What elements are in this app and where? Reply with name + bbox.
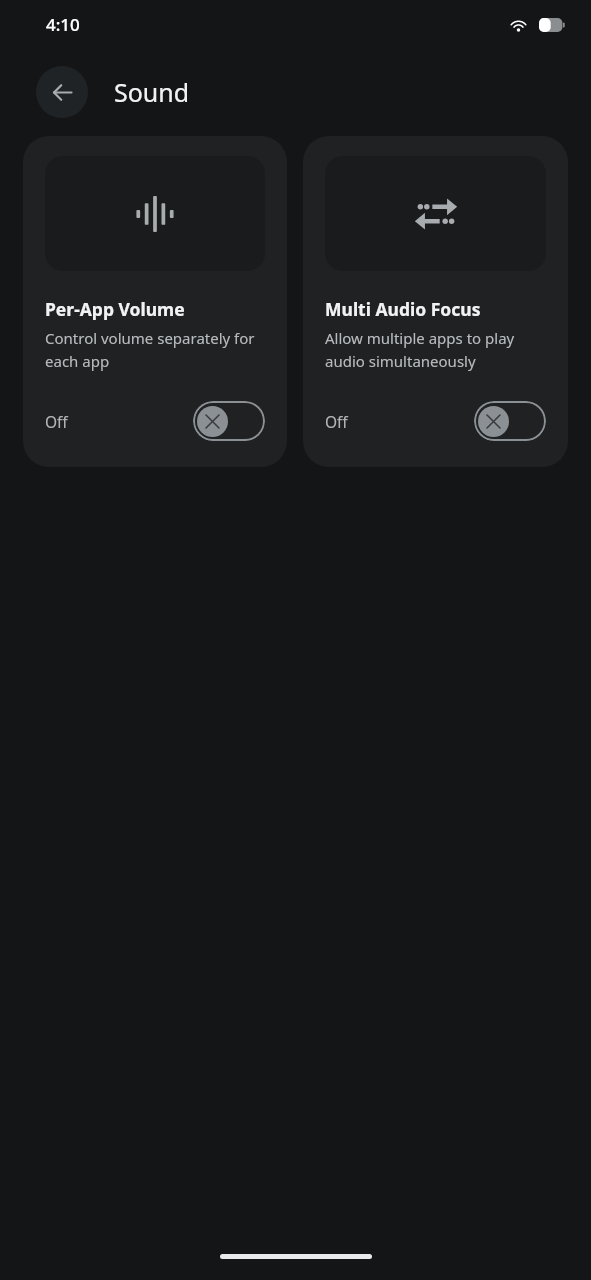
staticText: Off <box>325 411 348 432</box>
staticText: Off <box>45 411 68 432</box>
staticText: 4:10 <box>46 13 80 36</box>
button[interactable]: Toggle off <box>193 401 265 441</box>
button[interactable]: Multi Audio Focus <box>303 136 568 467</box>
button[interactable]: Per-App Volume <box>23 136 287 467</box>
staticText: Sound <box>114 75 190 109</box>
staticText: Allow multiple apps to play audio simult… <box>325 328 546 371</box>
staticText: Per-App Volume <box>45 297 185 321</box>
staticText: Multi Audio Focus <box>325 297 481 321</box>
button[interactable]: Toggle off <box>474 401 546 441</box>
button[interactable]: Back <box>36 66 88 118</box>
staticText: Control volume separately for each app <box>45 328 265 371</box>
